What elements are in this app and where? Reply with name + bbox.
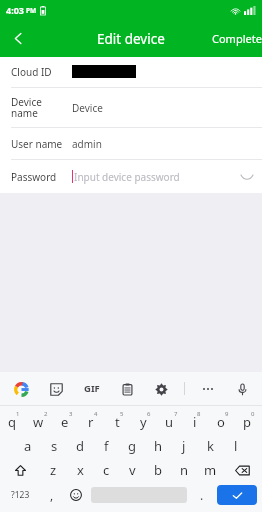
staticText: Device <box>72 101 103 115</box>
staticText: x <box>77 461 84 479</box>
staticText: 7 <box>174 410 178 418</box>
staticText: admin <box>72 137 102 151</box>
staticText: Password <box>11 170 57 184</box>
staticText: 0 <box>251 410 255 418</box>
button[interactable]: Backspace <box>223 458 262 482</box>
staticText: z <box>50 461 57 479</box>
button[interactable]: k <box>197 434 223 458</box>
button[interactable]: p <box>236 410 262 434</box>
staticText: Device name <box>11 95 42 120</box>
staticText: j <box>182 437 186 455</box>
button[interactable]: s <box>41 434 67 458</box>
button[interactable]: e <box>54 410 80 434</box>
staticText: 8 <box>197 410 201 418</box>
staticText: h <box>154 437 163 455</box>
button[interactable]: b <box>145 458 171 482</box>
staticText: . <box>200 487 204 503</box>
button[interactable]: More options <box>197 378 219 400</box>
button[interactable]: Complete <box>206 23 262 54</box>
staticText: 1 <box>16 410 20 418</box>
button[interactable]: h <box>145 434 171 458</box>
button[interactable]: j <box>171 434 197 458</box>
staticText: GIF <box>84 382 100 395</box>
staticText: n <box>180 461 189 479</box>
staticText: 3 <box>69 410 73 418</box>
staticText: 9 <box>225 410 229 418</box>
button[interactable]: Stickers <box>45 378 67 400</box>
staticText: q <box>8 413 16 431</box>
staticText: y <box>140 413 147 431</box>
button[interactable]: g <box>119 434 145 458</box>
button[interactable]: Enter <box>217 485 257 505</box>
button[interactable]: Cloud ID <box>0 57 262 87</box>
staticText: r <box>88 413 94 431</box>
staticText: p <box>243 413 251 431</box>
button[interactable]: a <box>14 434 41 458</box>
button[interactable]: Settings <box>150 378 172 400</box>
staticText: b <box>154 461 162 479</box>
button[interactable]: Password <box>0 160 262 193</box>
staticText: w <box>33 413 44 431</box>
staticText: Input device password <box>74 170 180 184</box>
button[interactable]: w <box>27 410 54 434</box>
button[interactable]: f <box>93 434 119 458</box>
button[interactable]: i <box>184 410 210 434</box>
button[interactable]: n <box>171 458 197 482</box>
button[interactable]: Clipboard <box>116 378 138 400</box>
staticText: v <box>129 461 136 479</box>
staticText: PM <box>26 6 37 15</box>
button[interactable]: z <box>40 458 67 482</box>
button[interactable]: GIF <box>80 378 104 399</box>
staticText: f <box>104 437 109 455</box>
button[interactable]: Back <box>0 20 37 57</box>
button[interactable]: t <box>106 410 132 434</box>
button[interactable]: u <box>158 410 184 434</box>
staticText: e <box>61 413 69 431</box>
staticText: Edit device <box>97 30 165 48</box>
staticText: g <box>128 437 136 455</box>
staticText: 4 <box>94 410 98 418</box>
button[interactable]: Voice input <box>231 378 253 400</box>
button[interactable]: y <box>132 410 158 434</box>
button[interactable]: Emoji <box>64 482 88 508</box>
button[interactable]: c <box>93 458 119 482</box>
button[interactable]: Google <box>10 378 32 400</box>
staticText: Cloud ID <box>11 65 52 79</box>
staticText: k <box>207 437 214 455</box>
staticText: t <box>115 413 120 431</box>
staticText: d <box>76 437 84 455</box>
button[interactable]: m <box>197 458 223 482</box>
button[interactable]: User name <box>0 128 262 159</box>
button[interactable]: ?123 <box>0 482 40 508</box>
button[interactable]: x <box>67 458 93 482</box>
button[interactable]: , <box>40 482 64 508</box>
staticText: 4:03 <box>6 4 24 16</box>
button[interactable]: o <box>210 410 236 434</box>
staticText: 6 <box>147 410 151 418</box>
staticText: s <box>51 437 58 455</box>
staticText: ?123 <box>11 489 30 501</box>
button[interactable]: d <box>67 434 93 458</box>
staticText: 2 <box>44 410 48 418</box>
button[interactable]: v <box>119 458 145 482</box>
staticText: Complete <box>212 31 262 46</box>
button[interactable]: Device name <box>0 88 262 127</box>
button[interactable]: Shift <box>0 458 40 482</box>
staticText: , <box>50 487 54 503</box>
button[interactable]: . <box>190 482 214 508</box>
button[interactable]: r <box>80 410 106 434</box>
staticText: User name <box>11 137 63 151</box>
staticText: c <box>103 461 110 479</box>
staticText: a <box>24 437 32 455</box>
staticText: o <box>217 413 225 431</box>
staticText: l <box>234 437 238 455</box>
button[interactable]: l <box>223 434 249 458</box>
staticText: u <box>165 413 174 431</box>
staticText: i <box>193 413 197 431</box>
staticText: 5 <box>120 410 124 418</box>
button[interactable]: q <box>0 410 27 434</box>
staticText: m <box>204 461 217 479</box>
button[interactable]: Show password <box>236 166 258 188</box>
